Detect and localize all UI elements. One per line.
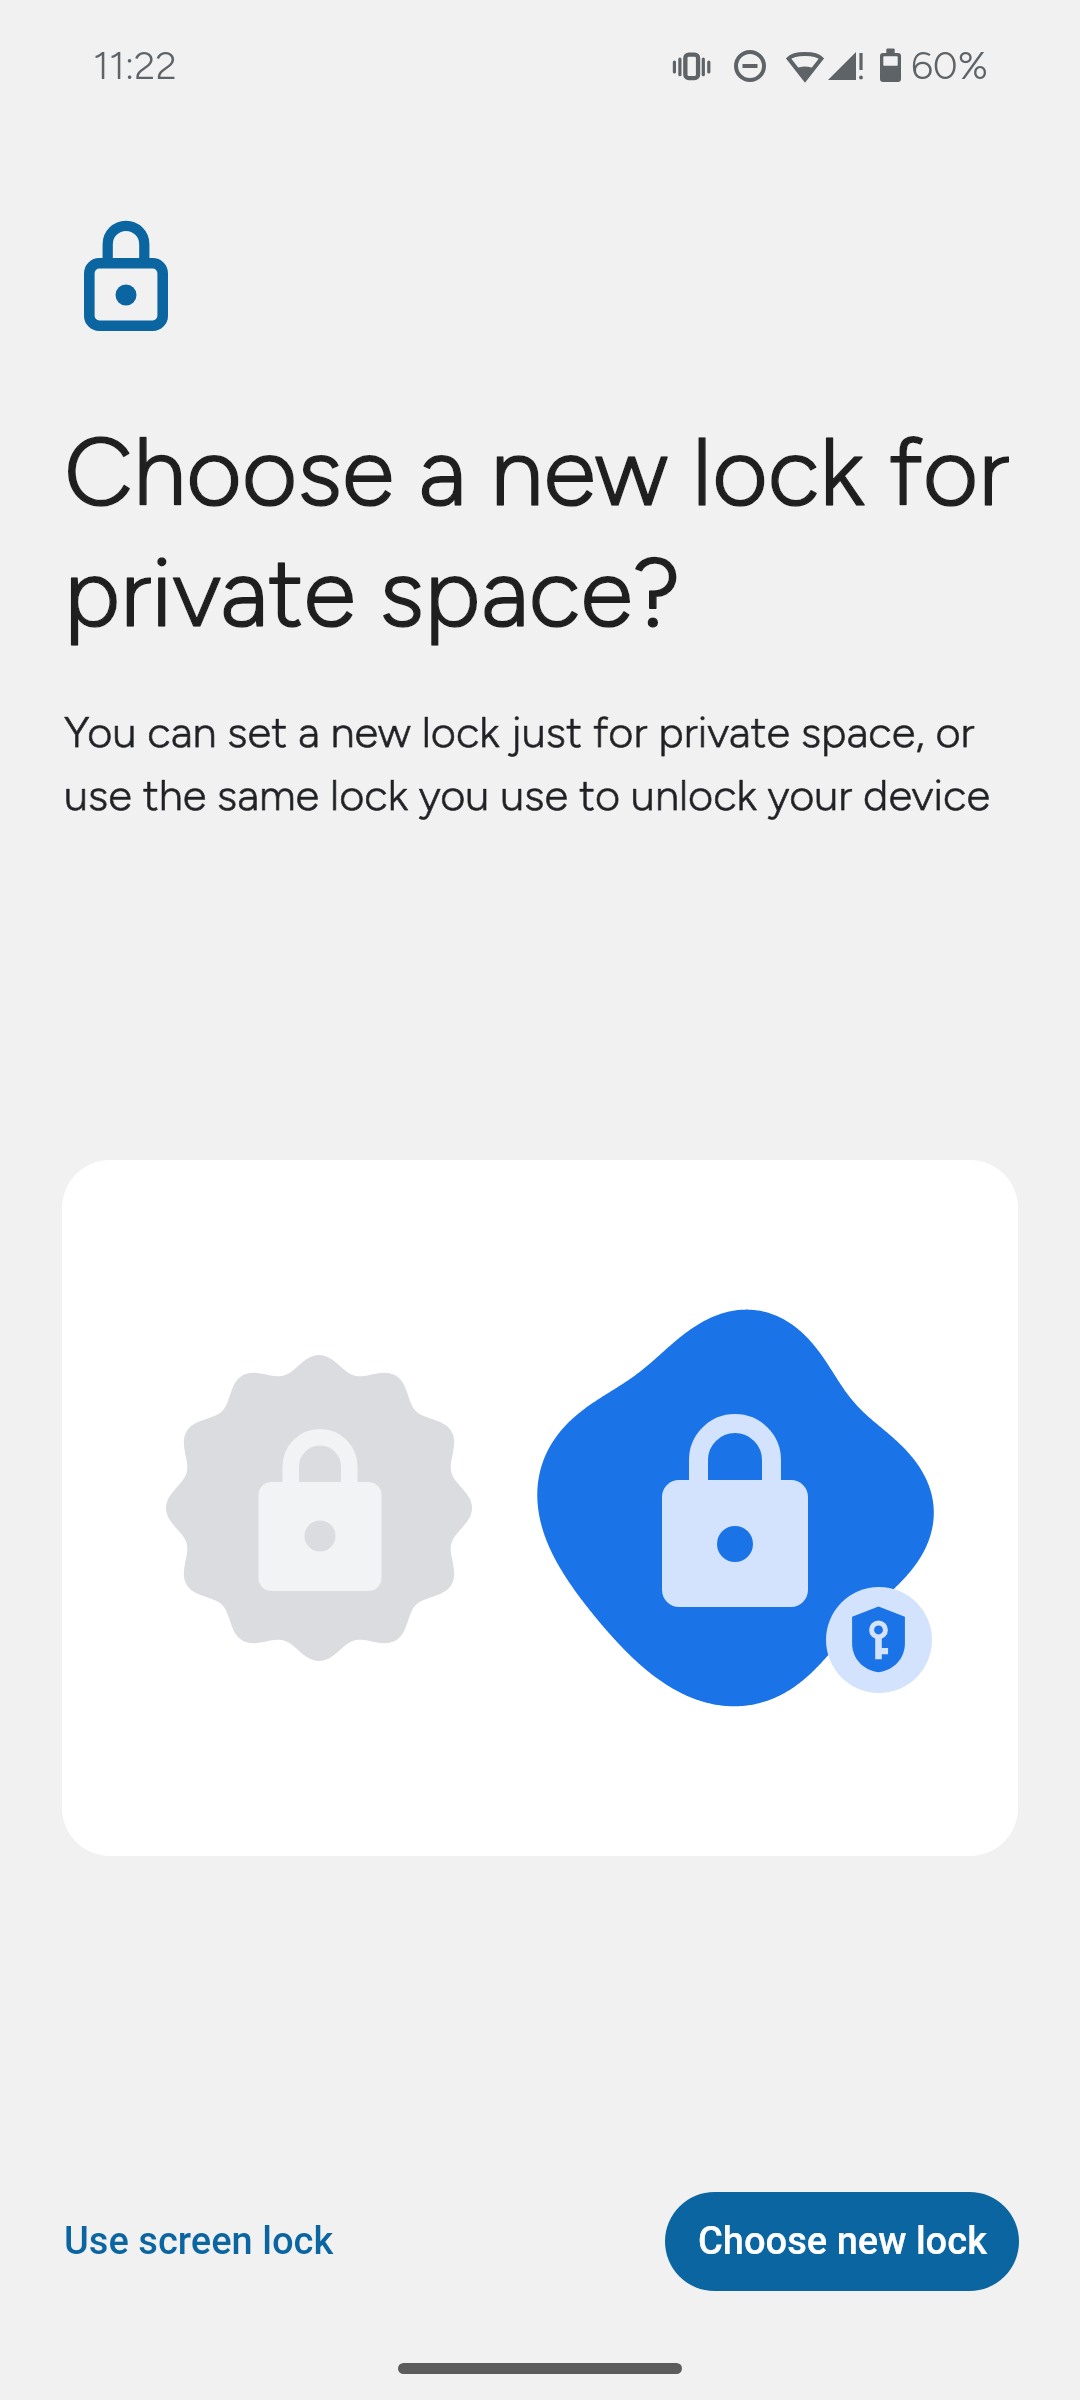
staticText: You can set a new lock just for private … xyxy=(64,706,1004,821)
button[interactable]: Use screen lock xyxy=(20,2191,378,2291)
staticText: You can set a new lock just for private … xyxy=(64,706,1004,821)
staticText: Use screen lock xyxy=(64,2219,334,2264)
staticText: Choose a new lock for private space? xyxy=(64,414,1016,650)
staticText: 11:22 xyxy=(93,42,178,89)
staticText: Choose new lock xyxy=(698,2219,987,2264)
staticText: 60% xyxy=(911,42,988,89)
staticText: Choose a new lock for private space? xyxy=(64,414,1016,650)
button[interactable]: Choose new lock xyxy=(665,2192,1019,2291)
